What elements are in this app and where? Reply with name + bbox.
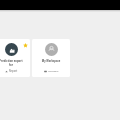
other: Favourite — [23, 43, 28, 48]
staticText: Report — [9, 69, 18, 73]
staticText: Workspace — [48, 70, 59, 73]
button[interactable]: Favourite — [0, 39, 30, 77]
staticText: My Workspace — [32, 59, 70, 62]
button[interactable]: My Workspace — [32, 39, 70, 77]
staticText: Prediction export for — [0, 59, 30, 67]
